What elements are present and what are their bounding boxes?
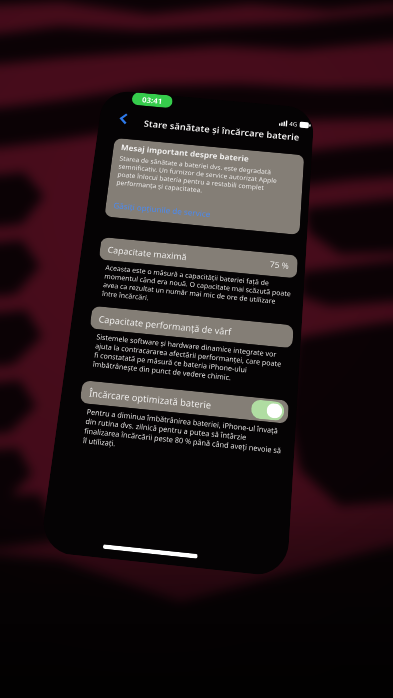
staticText: Pentru a diminua îmbătrânirea bateriei, … (82, 407, 283, 465)
button[interactable]: Capacitate performanță de vârf (89, 306, 294, 348)
staticText: Încărcare optimizată baterie (88, 386, 213, 411)
button[interactable]: Back (116, 111, 131, 125)
staticText: Sistemele software și hardware dinamice … (92, 332, 288, 388)
button[interactable]: Optimized battery charging toggle (250, 399, 285, 421)
button[interactable]: Capacitate maximă (99, 237, 298, 278)
button[interactable]: Găsiți opțiunile de service (105, 196, 301, 230)
staticText: Stare sănătate și încărcare baterie (143, 117, 300, 143)
staticText: 4G (289, 120, 298, 128)
staticText: 03:41 (141, 95, 163, 107)
staticText: Capacitate maximă (107, 243, 187, 262)
staticText: Capacitate performanță de vârf (98, 312, 232, 337)
staticText: Starea de sănătate a bateriei dvs. este … (116, 154, 296, 203)
staticText: 75 % (269, 259, 290, 272)
staticText: Aceasta este o măsură a capacității bate… (102, 263, 293, 316)
staticText: Găsiți opțiunile de service (113, 200, 211, 219)
staticText: Mesaj important despre baterie (120, 142, 249, 164)
